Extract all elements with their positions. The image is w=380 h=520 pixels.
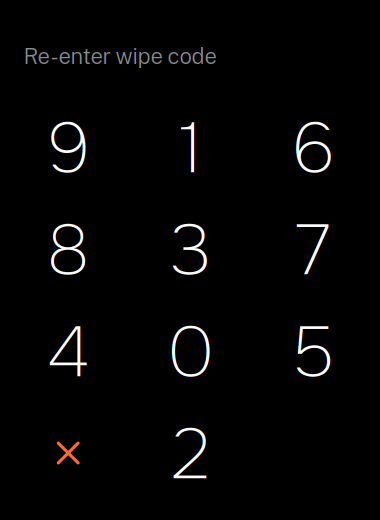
button[interactable]: 7 — [252, 200, 374, 302]
staticText: 4 — [47, 308, 90, 398]
button[interactable]: 6 — [252, 98, 374, 200]
button[interactable]: 3 — [129, 200, 252, 302]
button[interactable]: 0 — [129, 302, 252, 404]
staticText: Re-enter wipe code — [24, 43, 217, 69]
button[interactable]: 5 — [252, 302, 374, 404]
button[interactable]: 1 — [129, 98, 252, 200]
button[interactable]: 8 — [7, 200, 129, 302]
staticText: 3 — [170, 206, 211, 296]
staticText: 8 — [47, 206, 90, 296]
staticText: 0 — [168, 308, 214, 398]
staticText: 9 — [47, 104, 90, 194]
staticText: 7 — [295, 206, 330, 296]
button[interactable]: 9 — [7, 98, 129, 200]
staticText: 1 — [179, 104, 202, 194]
staticText: 2 — [171, 410, 210, 500]
staticText: 6 — [291, 104, 334, 194]
button[interactable]: 4 — [7, 302, 129, 404]
button[interactable]: Delete — [7, 404, 129, 506]
button[interactable]: 2 — [129, 404, 252, 506]
staticText: 5 — [292, 308, 334, 398]
